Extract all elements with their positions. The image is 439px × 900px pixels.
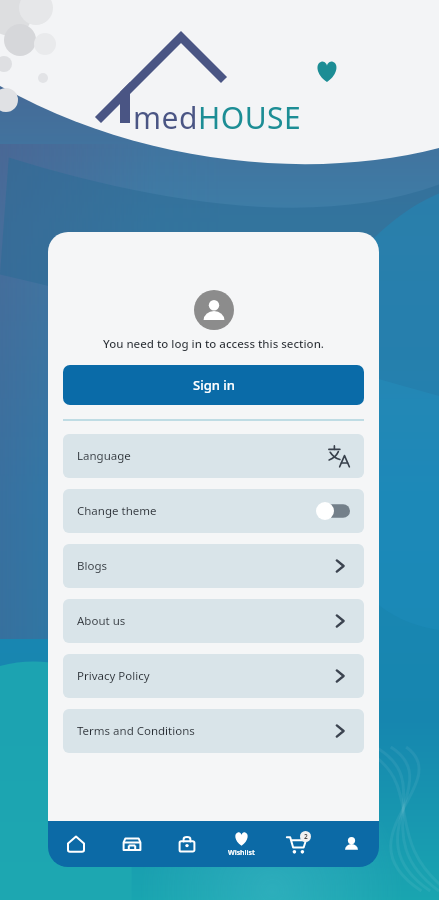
staticText: Language: [77, 448, 131, 464]
button[interactable]: Profile: [324, 821, 379, 867]
button[interactable]: Store: [104, 821, 159, 867]
staticText: Terms and Conditions: [77, 723, 195, 739]
staticText: HOUSE: [198, 97, 302, 138]
button[interactable]: Change theme: [316, 502, 350, 520]
other: Open: [330, 721, 350, 741]
other: Language: [328, 445, 350, 467]
staticText: med: [133, 97, 198, 138]
staticText: Wishlist: [228, 848, 255, 858]
staticText: Sign in: [193, 376, 235, 394]
staticText: Change theme: [77, 503, 157, 519]
button[interactable]: Cart: [269, 821, 324, 867]
button[interactable]: Terms and Conditions: [63, 709, 364, 753]
button[interactable]: Blogs: [63, 544, 364, 588]
staticText: Privacy Policy: [77, 668, 150, 684]
staticText: You need to log in to access this sectio…: [48, 336, 379, 352]
other: Open: [330, 556, 350, 576]
button[interactable]: About us: [63, 599, 364, 643]
other: Open: [330, 666, 350, 686]
button[interactable]: Change theme: [63, 489, 364, 533]
button[interactable]: Sign in: [63, 365, 364, 405]
other: Open: [330, 611, 350, 631]
staticText: About us: [77, 613, 126, 629]
button[interactable]: Language: [63, 434, 364, 478]
staticText: Blogs: [77, 558, 107, 574]
button[interactable]: Orders: [159, 821, 214, 867]
button[interactable]: Wishlist: [214, 821, 269, 867]
button[interactable]: Privacy Policy: [63, 654, 364, 698]
button[interactable]: Home: [48, 821, 104, 867]
staticText: 2: [304, 832, 308, 841]
